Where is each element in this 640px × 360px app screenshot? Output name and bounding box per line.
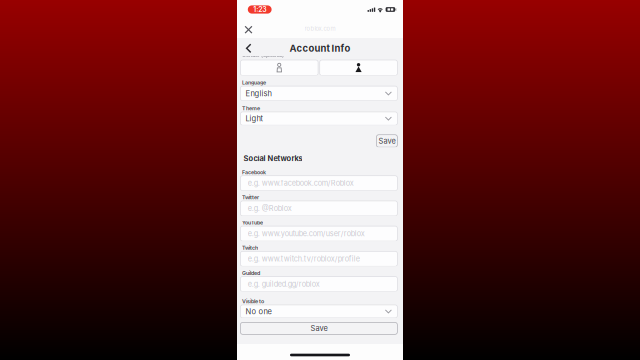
staticText: Social Networks — [243, 154, 302, 163]
staticText: Theme — [242, 105, 260, 112]
button[interactable]: e.g. www.facebook.com/Roblox — [240, 176, 397, 191]
staticText: e.g. www.facebook.com/Roblox — [248, 179, 354, 188]
staticText: Save — [378, 136, 395, 145]
staticText: Language — [242, 79, 266, 86]
button[interactable]: e.g. www.youtube.com/user/roblox — [240, 226, 397, 241]
button[interactable]: No one — [240, 305, 397, 318]
staticText: e.g. www.twitch.tv/roblox/profile — [248, 254, 360, 263]
button[interactable]: English — [240, 86, 397, 101]
staticText: Guilded — [242, 270, 260, 276]
button[interactable]: Back — [242, 38, 255, 56]
staticText: Twitch — [242, 245, 258, 251]
staticText: English — [246, 89, 272, 98]
button[interactable]: e.g. @Roblox — [240, 201, 397, 216]
button[interactable]: Female — [320, 60, 397, 75]
button[interactable]: Save — [376, 135, 397, 147]
staticText: No one — [246, 307, 272, 316]
staticText: e.g. @Roblox — [248, 204, 292, 213]
staticText: Gender (optional) — [242, 52, 284, 58]
staticText: Account Info — [289, 43, 350, 54]
button[interactable]: Save — [240, 322, 397, 334]
staticText: Visible to — [242, 298, 264, 305]
staticText: YouTube — [242, 219, 263, 226]
button[interactable]: e.g. www.twitch.tv/roblox/profile — [240, 251, 397, 266]
staticText: Facebook — [242, 169, 266, 175]
button[interactable]: Male — [240, 60, 318, 75]
staticText: roblox.com — [304, 25, 335, 32]
button[interactable]: Close — [241, 20, 256, 37]
staticText: e.g. guilded.gg/roblox — [248, 280, 320, 288]
staticText: Twitter — [242, 194, 259, 201]
button[interactable]: Light — [240, 112, 397, 125]
button[interactable]: e.g. guilded.gg/roblox — [240, 276, 397, 291]
staticText: 1:23 — [253, 5, 266, 14]
staticText: Save — [310, 324, 327, 333]
staticText: e.g. www.youtube.com/user/roblox — [248, 229, 365, 238]
staticText: Light — [246, 114, 263, 123]
